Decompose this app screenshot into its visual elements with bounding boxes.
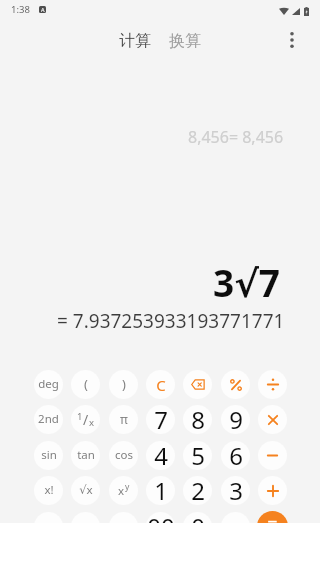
button[interactable]: 7 xyxy=(146,405,175,434)
button[interactable]: tan xyxy=(71,441,100,470)
button[interactable]: 计算 xyxy=(112,25,158,57)
staticText: x xyxy=(118,483,125,499)
button[interactable]: Backspace xyxy=(183,370,212,399)
staticText: 1:38 xyxy=(11,3,30,16)
staticText: ( xyxy=(84,375,88,393)
staticText: 4 xyxy=(154,441,168,468)
staticText: cos xyxy=(115,447,133,463)
staticText: 8,456= 8,456 xyxy=(188,126,284,148)
button[interactable] xyxy=(258,405,287,434)
button[interactable]: ( xyxy=(71,370,100,399)
staticText: 2nd xyxy=(38,411,59,427)
staticText: y xyxy=(125,481,130,493)
staticText: 计算 xyxy=(119,31,151,51)
staticText: 0 xyxy=(191,512,205,539)
staticText: = 7.937253933193771771 xyxy=(57,308,285,334)
button[interactable]: 1 xyxy=(146,476,175,505)
button[interactable]: , xyxy=(71,512,100,541)
staticText: 8 xyxy=(191,405,205,432)
staticText: 3√7 xyxy=(213,257,281,307)
button[interactable] xyxy=(258,441,287,470)
button[interactable]: 1 xyxy=(71,405,100,434)
button[interactable]: . xyxy=(34,512,63,541)
staticText: / xyxy=(83,410,89,429)
staticText: 00 xyxy=(147,512,175,539)
button[interactable]: More options xyxy=(274,22,310,58)
staticText: sin xyxy=(41,447,57,463)
button[interactable]: 换算 xyxy=(162,25,208,57)
staticText: C xyxy=(156,375,166,395)
button[interactable]: π xyxy=(109,405,138,434)
button[interactable]: deg xyxy=(34,370,63,399)
staticText: 9 xyxy=(229,405,243,432)
button[interactable]: = xyxy=(257,511,288,542)
staticText: tan xyxy=(77,447,95,463)
button[interactable]: 4 xyxy=(146,441,175,470)
staticText: A xyxy=(41,6,45,13)
button[interactable] xyxy=(258,370,287,399)
button[interactable] xyxy=(258,476,287,505)
button[interactable]: sin xyxy=(34,441,63,470)
staticText: x xyxy=(89,416,95,429)
button[interactable]: 3 xyxy=(221,476,250,505)
staticText: 6 xyxy=(229,441,243,468)
button[interactable]: cos xyxy=(109,441,138,470)
button[interactable]: 2nd xyxy=(34,405,63,434)
staticText: = xyxy=(267,511,278,536)
button[interactable]: x! xyxy=(34,476,63,505)
staticText: π xyxy=(120,411,128,427)
staticText: 7 xyxy=(154,405,168,432)
button[interactable]: 8 xyxy=(183,405,212,434)
staticText: 3 xyxy=(229,476,243,503)
button[interactable]: 5 xyxy=(183,441,212,470)
staticText: 换算 xyxy=(169,31,201,51)
staticText: 1 xyxy=(77,410,83,423)
staticText: 1 xyxy=(154,476,168,503)
button[interactable]: 6 xyxy=(221,441,250,470)
button[interactable] xyxy=(221,370,250,399)
staticText: √x xyxy=(79,482,93,498)
button[interactable]: 0 xyxy=(183,512,212,541)
button[interactable]: e xyxy=(109,512,138,541)
button[interactable]: 2 xyxy=(183,476,212,505)
button[interactable]: . xyxy=(221,512,250,541)
button[interactable]: x xyxy=(109,476,138,505)
staticText: 5 xyxy=(191,441,205,468)
staticText: deg xyxy=(38,376,59,392)
button[interactable]: 00 xyxy=(146,512,175,541)
button[interactable]: ) xyxy=(109,370,138,399)
staticText: ) xyxy=(122,375,126,393)
staticText: x! xyxy=(44,482,54,498)
button[interactable]: 9 xyxy=(221,405,250,434)
staticText: 2 xyxy=(191,476,205,503)
other: Backspace xyxy=(191,379,205,390)
button[interactable]: √x xyxy=(71,476,100,505)
button[interactable]: C xyxy=(146,370,175,399)
